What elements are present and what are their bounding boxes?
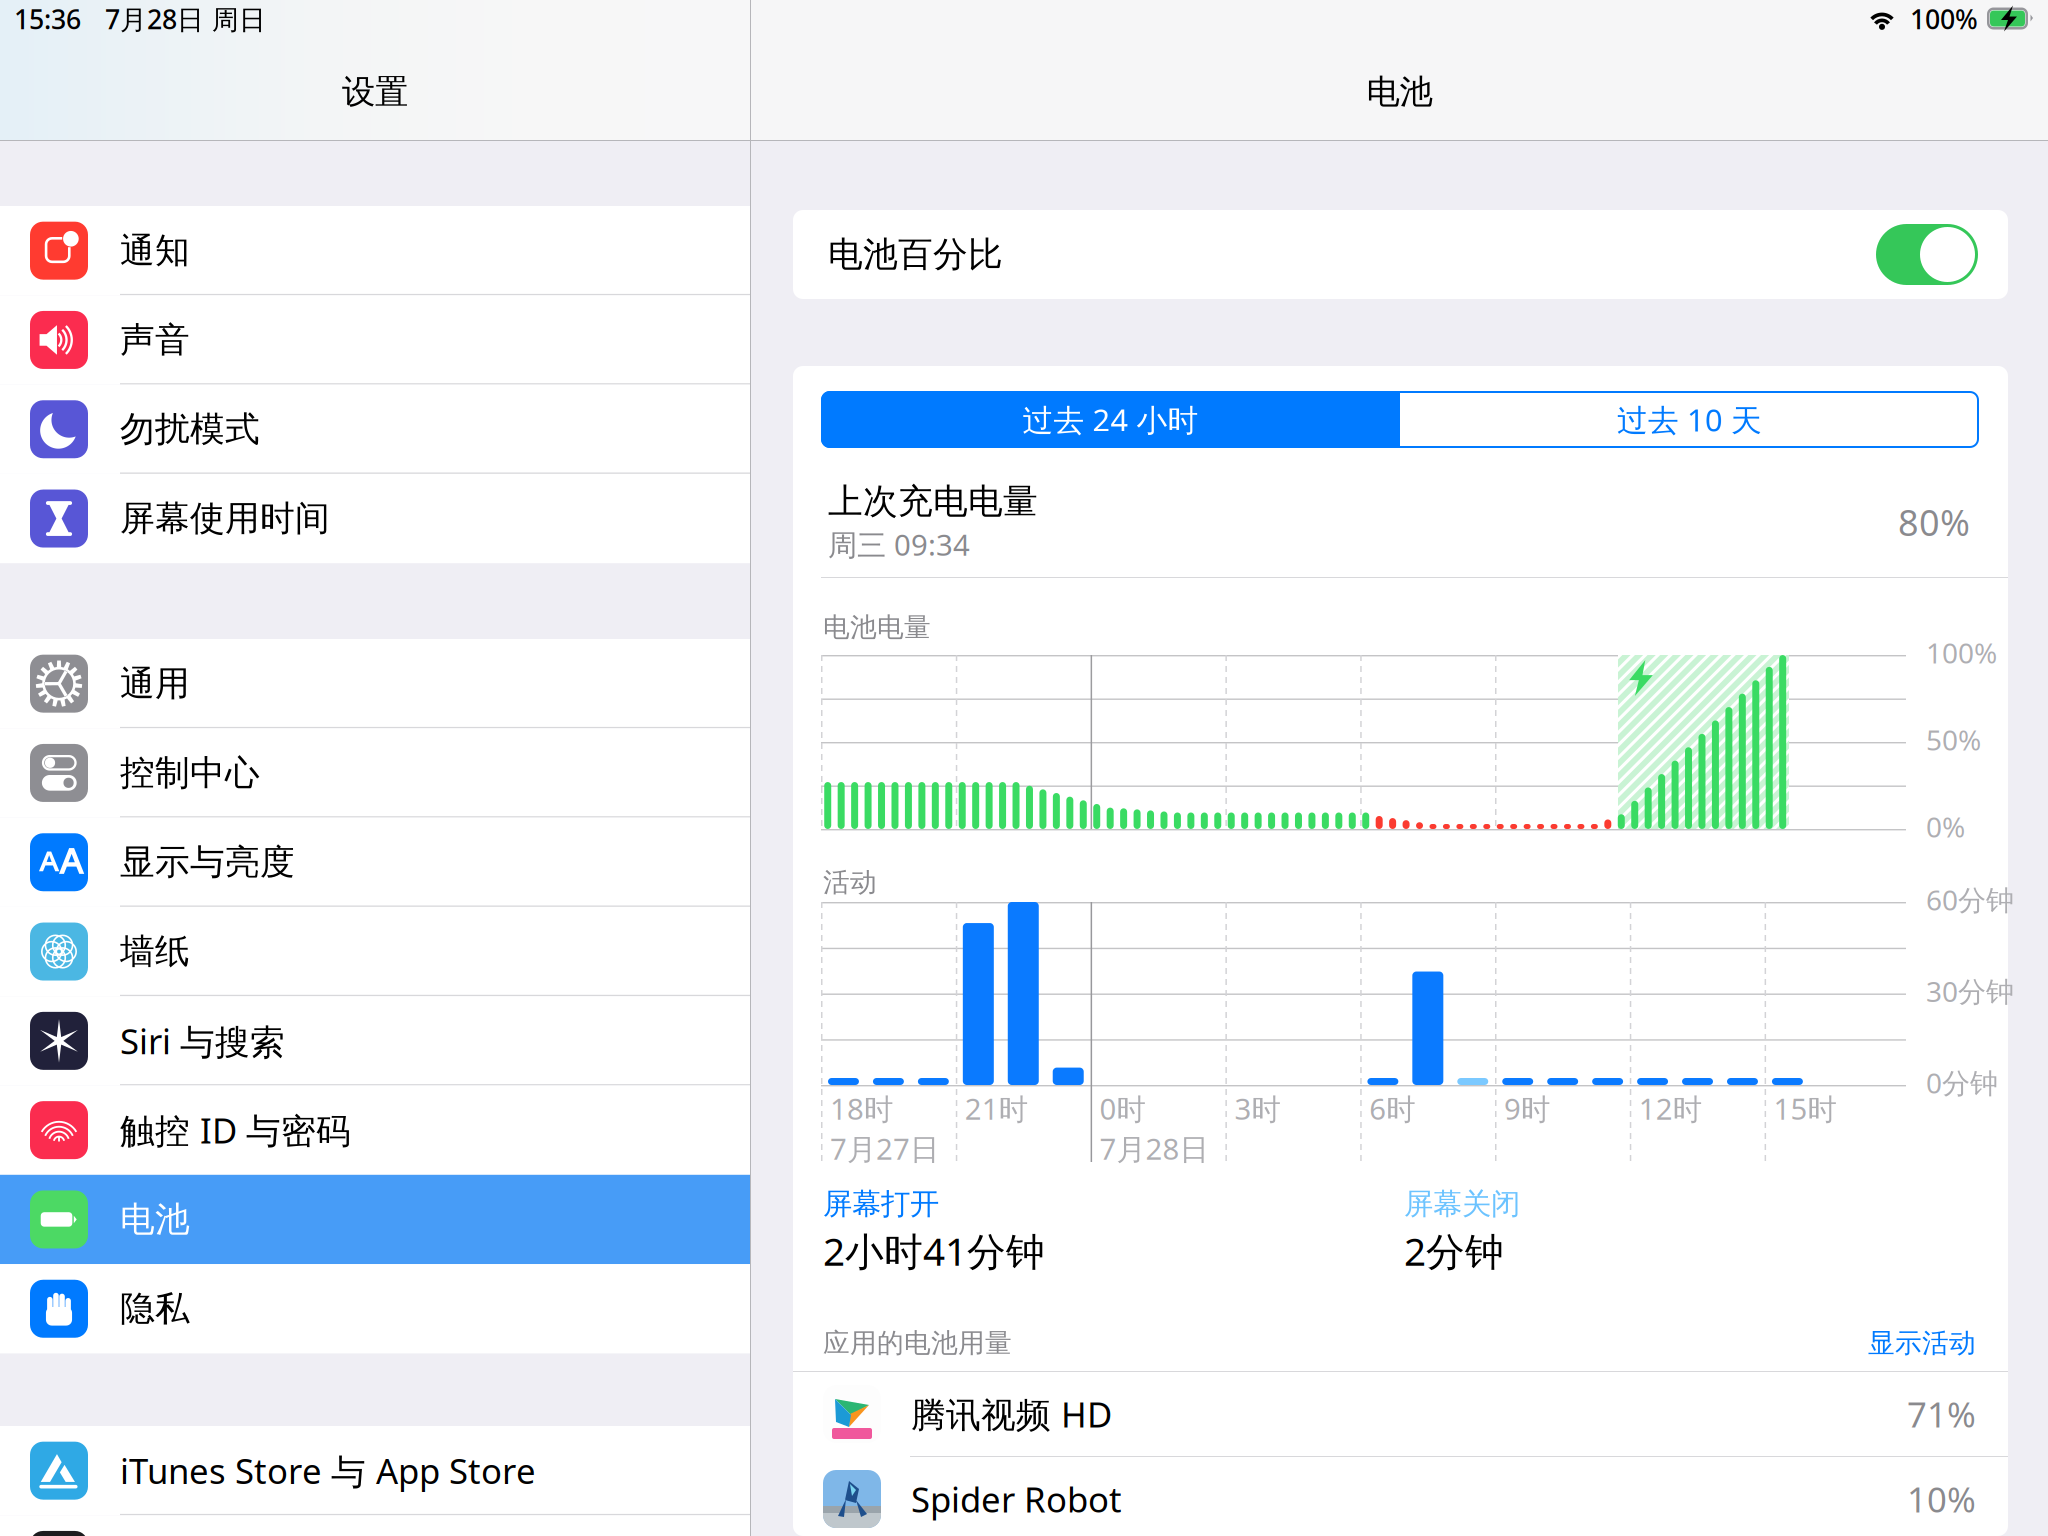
staticText: 过去 10 天 (1617, 399, 1762, 440)
button[interactable]: 勿扰模式 (0, 385, 750, 474)
button[interactable]: 腾讯视频 HD (793, 1372, 2008, 1456)
button[interactable]: iTunes Store 与 App Store (0, 1426, 750, 1515)
staticText: 60分钟 (1926, 881, 2014, 918)
staticText: 15:36 (14, 1, 81, 37)
button[interactable]: 通知 (0, 206, 750, 295)
button[interactable]: 隐私 (0, 1264, 750, 1353)
staticText: 50% (1926, 721, 1981, 758)
staticText: 电池 (1366, 71, 1432, 112)
staticText: 显示与亮度 (120, 841, 295, 884)
staticText: 屏幕打开 (823, 1186, 939, 1222)
staticText: 0时 (1100, 1089, 1146, 1128)
staticText: 屏幕使用时间 (120, 497, 330, 540)
staticText: 0分钟 (1926, 1064, 1998, 1101)
staticText: 9时 (1504, 1089, 1550, 1128)
button[interactable]: 钱包与 Apple Pay (0, 1515, 750, 1536)
staticText: 2分钟 (1404, 1225, 1504, 1276)
button[interactable]: 控制中心 (0, 728, 750, 818)
button[interactable]: 通用 (0, 639, 750, 728)
staticText: 10% (1907, 1476, 1976, 1522)
button[interactable]: 显示活动 (1868, 1327, 1976, 1359)
button[interactable]: 电池百分比 (793, 210, 2008, 299)
staticText: 71% (1907, 1391, 1976, 1437)
staticText: 电池电量 (823, 611, 931, 644)
staticText: Siri 与搜索 (120, 1018, 285, 1064)
button[interactable]: 触控 ID 与密码 (0, 1085, 750, 1175)
button[interactable]: Siri 与搜索 (0, 996, 750, 1085)
staticText: 应用的电池用量 (823, 1327, 1012, 1359)
button[interactable]: 墙纸 (0, 907, 750, 996)
staticText: 12时 (1639, 1089, 1702, 1128)
staticText: 电池百分比 (828, 233, 1003, 276)
staticText: 15时 (1774, 1089, 1837, 1128)
staticText: 腾讯视频 HD (911, 1391, 1112, 1437)
button[interactable]: 过去 24 小时 (821, 391, 1400, 448)
staticText: 上次充电电量 (828, 480, 1038, 523)
staticText: 18时 (830, 1089, 893, 1128)
staticText: 80% (1898, 498, 1970, 546)
staticText: 通知 (120, 229, 190, 272)
staticText: 电池 (120, 1198, 190, 1241)
button[interactable]: Spider Robot (793, 1457, 2008, 1536)
staticText: 7月28日 (1100, 1129, 1209, 1168)
staticText: 0% (1926, 808, 1965, 845)
staticText: 显示活动 (1868, 1327, 1976, 1359)
staticText: 通用 (120, 662, 190, 705)
staticText: 勿扰模式 (120, 408, 260, 451)
staticText: 过去 24 小时 (1022, 399, 1198, 440)
staticText: 6时 (1369, 1089, 1415, 1128)
button[interactable]: 电池 (0, 1175, 750, 1264)
staticText: 设置 (342, 71, 408, 112)
staticText: 30分钟 (1926, 972, 2014, 1010)
staticText: Spider Robot (911, 1476, 1122, 1522)
staticText: 周三 09:34 (828, 525, 970, 564)
staticText: 声音 (120, 319, 190, 361)
staticText: 控制中心 (120, 752, 260, 794)
staticText: 7月28日 周日 (105, 1, 266, 37)
button[interactable]: 屏幕使用时间 (0, 474, 750, 563)
staticText: 100% (1926, 634, 1997, 671)
staticText: 3时 (1234, 1089, 1280, 1128)
staticText: 屏幕关闭 (1404, 1186, 1520, 1222)
button[interactable]: 声音 (0, 295, 750, 385)
button[interactable]: 过去 10 天 (1400, 391, 1979, 448)
staticText: 7月27日 (830, 1129, 939, 1168)
button[interactable]: 显示与亮度 (0, 818, 750, 907)
staticText: 触控 ID 与密码 (120, 1107, 351, 1153)
staticText: 2小时41分钟 (823, 1225, 1045, 1276)
staticText: 21时 (965, 1089, 1028, 1128)
staticText: 活动 (823, 866, 877, 899)
staticText: 墙纸 (120, 930, 190, 973)
staticText: 100% (1910, 1, 1978, 37)
staticText: 隐私 (120, 1287, 190, 1330)
staticText: iTunes Store 与 App Store (120, 1447, 536, 1494)
